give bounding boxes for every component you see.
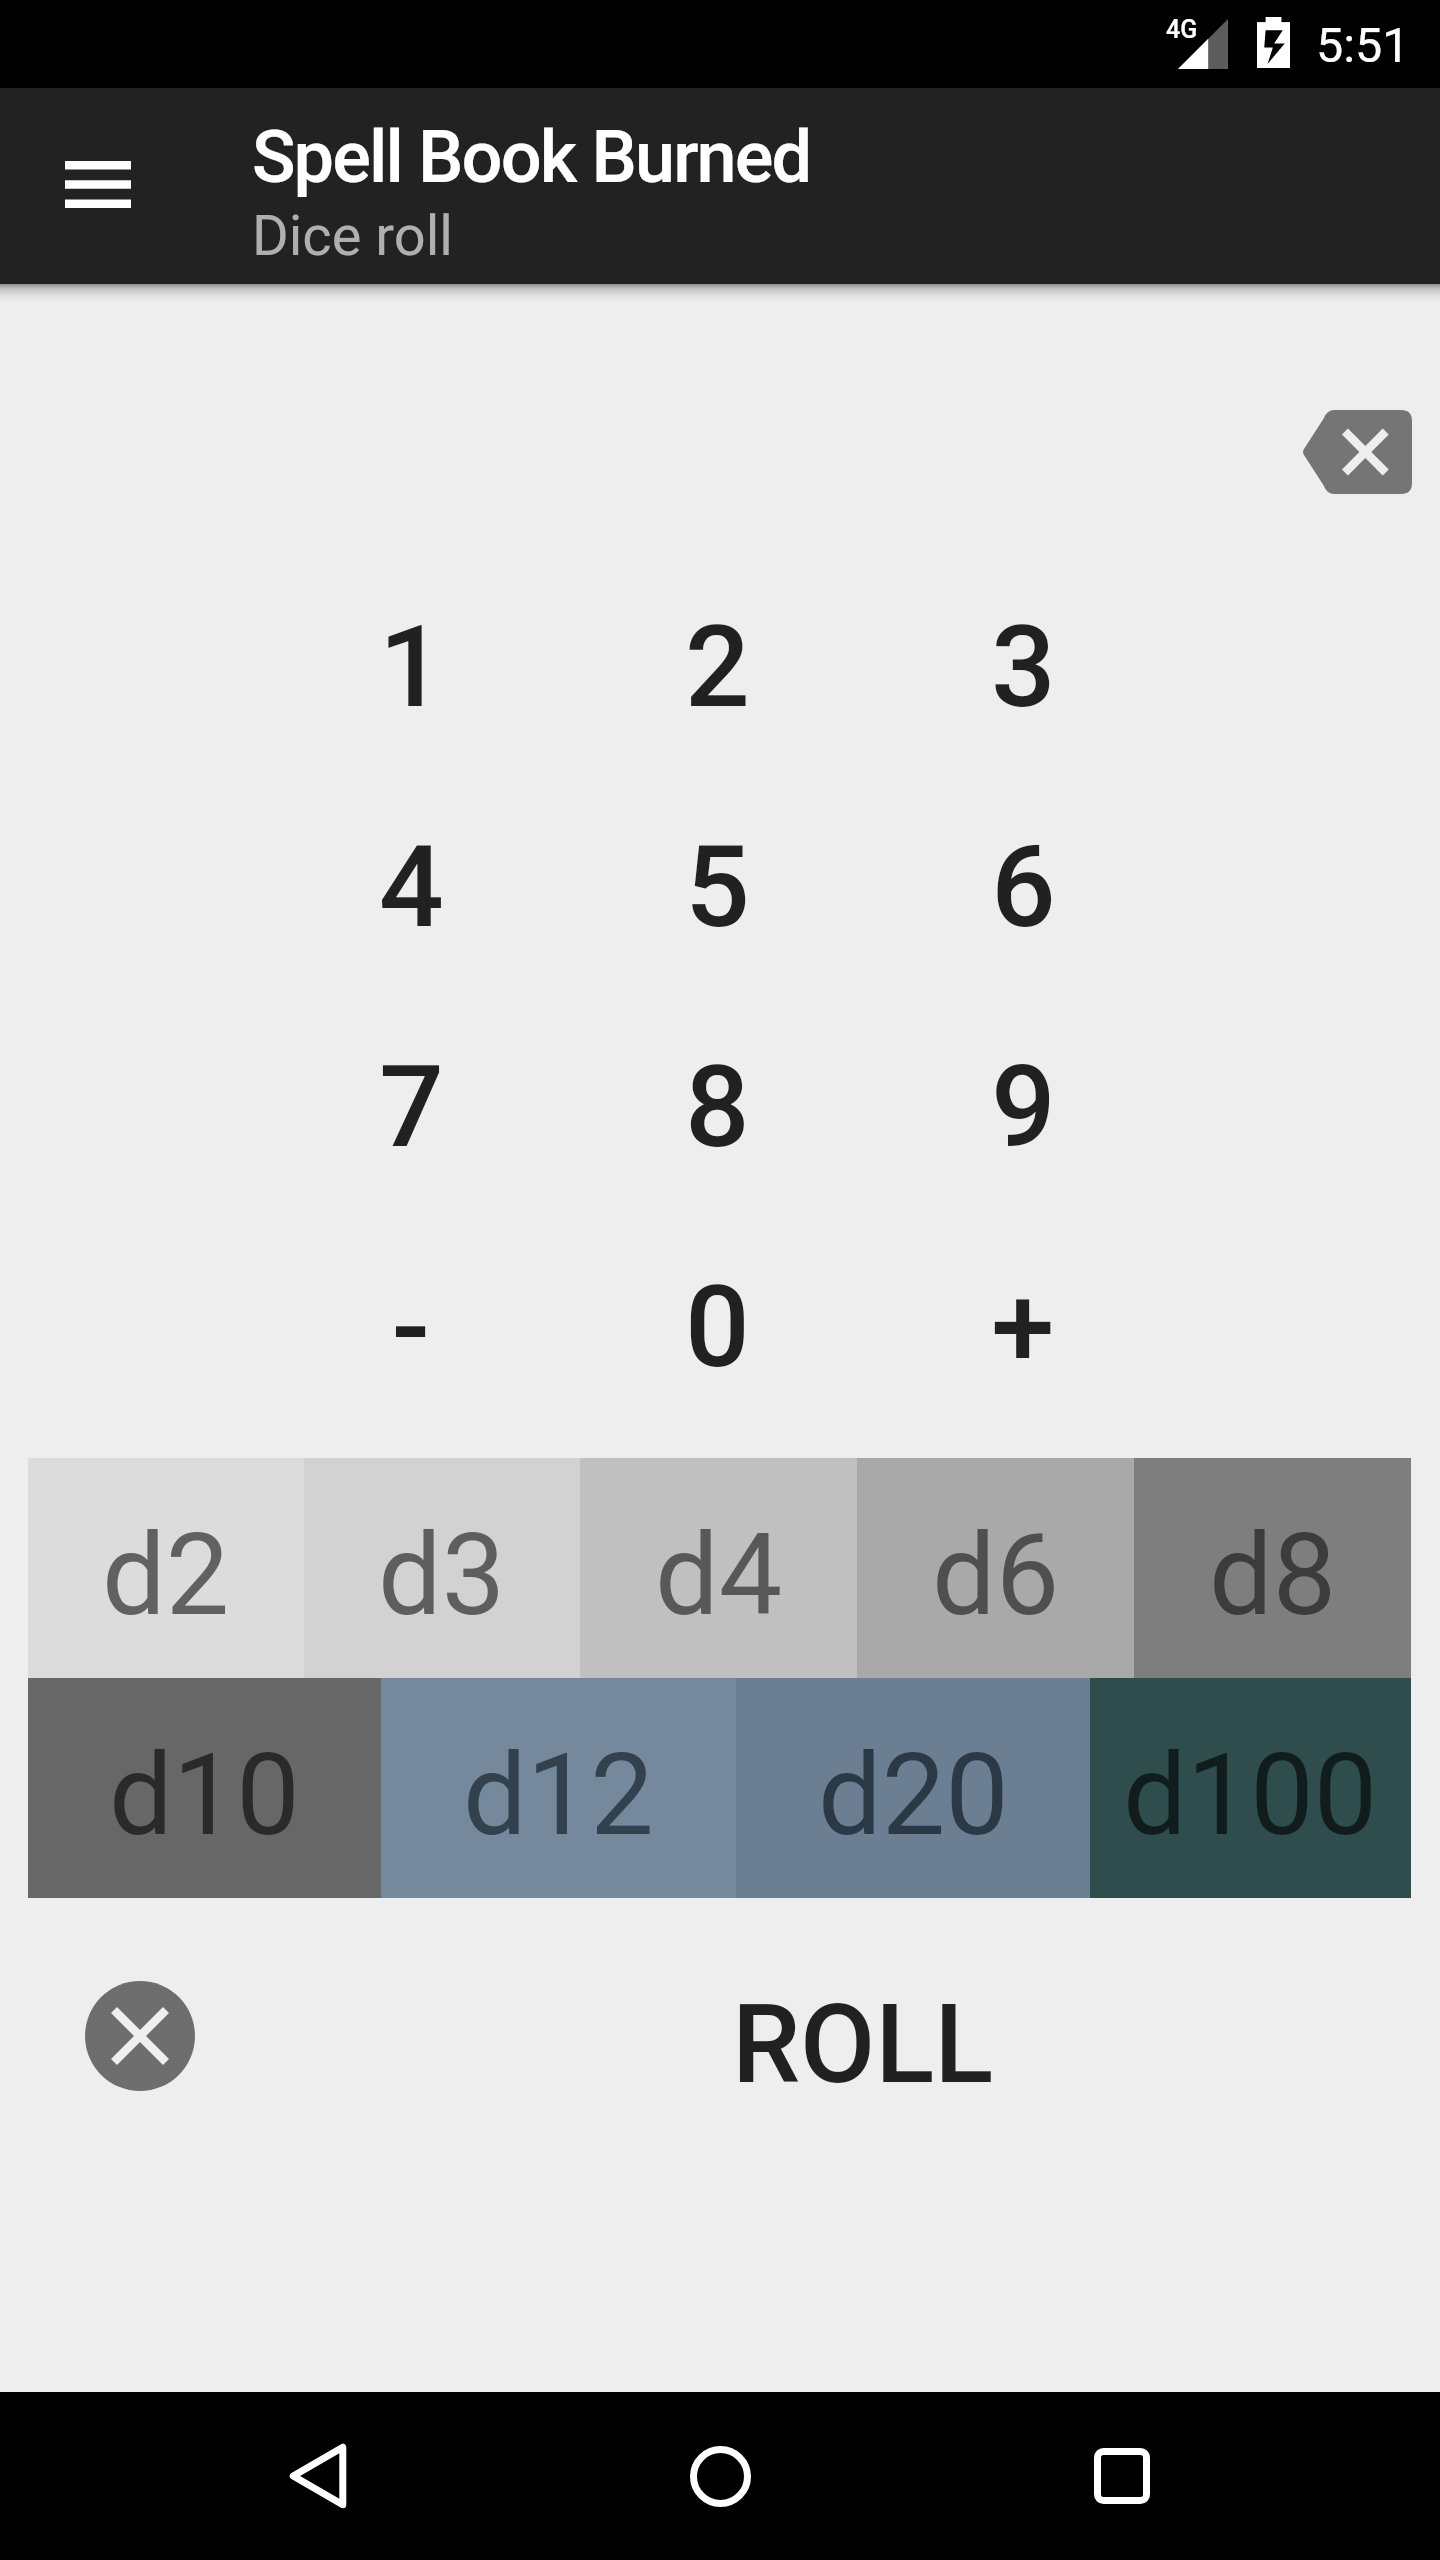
staticText: d8 (1209, 1509, 1337, 1641)
button[interactable]: d4 (580, 1458, 857, 1678)
button[interactable]: ROLL (643, 1960, 1083, 2130)
staticText: Dice roll (252, 203, 453, 269)
button[interactable]: 6 (870, 777, 1176, 997)
button[interactable]: Recent apps (1038, 2392, 1206, 2560)
staticText: 6 (991, 820, 1056, 954)
staticText: 3 (991, 600, 1056, 734)
staticText: 5:51 (1316, 17, 1410, 74)
button[interactable]: d12 (381, 1678, 736, 1898)
button[interactable]: 9 (870, 997, 1176, 1217)
button[interactable]: Back (234, 2392, 402, 2560)
staticText: d2 (102, 1509, 230, 1641)
staticText: d20 (818, 1729, 1009, 1861)
staticText: d6 (932, 1509, 1060, 1641)
button[interactable]: 8 (564, 997, 870, 1217)
button[interactable]: d3 (304, 1458, 580, 1678)
button[interactable]: d100 (1090, 1678, 1411, 1898)
button[interactable]: Open navigation menu (28, 116, 168, 256)
button[interactable]: Clear (85, 1981, 195, 2091)
staticText: d10 (109, 1729, 300, 1861)
button[interactable]: d10 (28, 1678, 381, 1898)
button[interactable]: 0 (564, 1217, 870, 1437)
staticText: d4 (655, 1509, 783, 1641)
staticText: 7 (379, 1040, 444, 1174)
staticText: d100 (1123, 1729, 1378, 1861)
staticText: 4G (1166, 15, 1198, 44)
button[interactable]: + (870, 1217, 1176, 1437)
staticText: Spell Book Burned (252, 115, 811, 199)
staticText: 8 (685, 1040, 750, 1174)
button[interactable]: d6 (857, 1458, 1134, 1678)
staticText: 2 (685, 600, 750, 734)
staticText: ROLL (732, 1981, 994, 2109)
button[interactable]: d20 (736, 1678, 1090, 1898)
button[interactable]: 2 (564, 557, 870, 777)
staticText: 9 (991, 1040, 1056, 1174)
button[interactable]: 1 (258, 557, 564, 777)
button[interactable]: d2 (28, 1458, 304, 1678)
button[interactable]: 5 (564, 777, 870, 997)
button[interactable]: - (258, 1217, 564, 1437)
staticText: 0 (685, 1260, 750, 1394)
button[interactable]: Backspace (1302, 410, 1412, 494)
staticText: + (991, 1260, 1055, 1394)
staticText: d12 (463, 1729, 654, 1861)
button[interactable]: 7 (258, 997, 564, 1217)
button[interactable]: d8 (1134, 1458, 1411, 1678)
staticText: d3 (378, 1509, 506, 1641)
button[interactable]: 3 (870, 557, 1176, 777)
staticText: 5 (685, 820, 750, 954)
staticText: - (392, 1260, 430, 1394)
button[interactable]: Home (636, 2392, 804, 2560)
staticText: 4 (379, 820, 444, 954)
button[interactable]: 4 (258, 777, 564, 997)
staticText: 1 (379, 600, 444, 734)
